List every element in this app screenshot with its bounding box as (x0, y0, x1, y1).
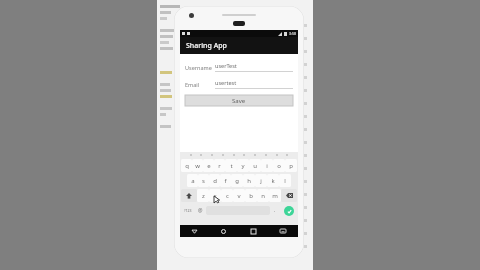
button[interactable]: @ (195, 204, 206, 217)
staticText: j (260, 177, 262, 185)
button[interactable]: c (221, 189, 233, 202)
button[interactable]: k (267, 174, 279, 187)
staticText: Sharing App (186, 41, 227, 51)
button[interactable]: w (192, 159, 203, 172)
button[interactable]: j (255, 174, 267, 187)
staticText: n (261, 192, 265, 200)
button[interactable]: p (285, 159, 297, 172)
button[interactable]: Send (280, 204, 297, 217)
button[interactable]: Shift (181, 189, 197, 202)
staticText: @ (198, 207, 203, 214)
button[interactable]: v (233, 189, 245, 202)
staticText: h (247, 177, 251, 185)
button[interactable]: ?123 (181, 204, 195, 217)
staticText: v (237, 192, 241, 200)
button[interactable]: a (187, 174, 198, 187)
button[interactable]: z (197, 189, 209, 202)
staticText: w (195, 162, 200, 170)
other: Cursor (214, 196, 221, 203)
button[interactable]: l (279, 174, 291, 187)
staticText: f (224, 177, 227, 185)
staticText: o (277, 162, 281, 170)
staticText: Username (185, 64, 215, 71)
staticText: usertest (215, 79, 237, 86)
button[interactable]: x (209, 189, 221, 202)
staticText: . (274, 207, 276, 214)
staticText: r (218, 162, 221, 170)
button[interactable]: t (225, 159, 237, 172)
staticText: Save (232, 97, 246, 105)
staticText: Email (185, 81, 215, 88)
staticText: y (241, 162, 245, 170)
button[interactable]: Back (180, 225, 209, 237)
button[interactable]: Recents (238, 225, 268, 237)
button[interactable]: e (203, 159, 214, 172)
button[interactable]: Save (185, 95, 293, 106)
button[interactable]: i (261, 159, 273, 172)
staticText: x (213, 192, 217, 200)
staticText: userTest (215, 62, 237, 69)
button[interactable]: q (181, 159, 192, 172)
staticText: s (202, 177, 205, 185)
staticText: q (185, 162, 189, 170)
staticText: a (191, 177, 195, 185)
staticText: p (289, 162, 293, 170)
staticText: c (226, 192, 229, 200)
staticText: 3:58 (289, 31, 296, 36)
staticText: l (284, 177, 286, 185)
button[interactable]: Email (185, 79, 293, 89)
button[interactable]: g (231, 174, 243, 187)
button[interactable]: Home (209, 225, 238, 237)
button[interactable]: o (273, 159, 285, 172)
button[interactable]: Backspace (281, 189, 297, 202)
button[interactable]: Keyboard (268, 225, 298, 237)
staticText: k (271, 177, 275, 185)
staticText: t (230, 162, 233, 170)
staticText: g (235, 177, 239, 185)
button[interactable]: m (269, 189, 281, 202)
button[interactable]: f (220, 174, 231, 187)
button[interactable]: . (270, 204, 280, 217)
staticText: m (272, 192, 278, 200)
button[interactable]: u (249, 159, 261, 172)
staticText: ?123 (184, 208, 192, 213)
button[interactable]: b (245, 189, 257, 202)
button[interactable]: Sharing App (180, 37, 298, 54)
staticText: e (207, 162, 211, 170)
button[interactable]: d (209, 174, 220, 187)
button[interactable]: r (214, 159, 225, 172)
staticText: u (253, 162, 257, 170)
staticText: b (249, 192, 253, 200)
button[interactable]: h (243, 174, 255, 187)
button[interactable]: n (257, 189, 269, 202)
button[interactable]: y (237, 159, 249, 172)
button[interactable]: s (198, 174, 209, 187)
staticText: z (202, 192, 205, 200)
staticText: i (266, 162, 268, 170)
staticText: d (213, 177, 217, 185)
button[interactable]: Username (185, 62, 293, 72)
